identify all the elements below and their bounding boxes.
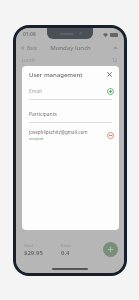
- button[interactable]: Close: [104, 69, 115, 80]
- staticText: User management: [29, 71, 104, 79]
- staticText: Back: [27, 45, 38, 51]
- staticText: Total: [24, 243, 33, 248]
- button[interactable]: Remove participant: [107, 132, 114, 139]
- button[interactable]: Add participant: [107, 88, 114, 95]
- staticText: Lunch: [22, 57, 35, 63]
- staticText: 12: [112, 57, 118, 63]
- staticText: $29.95: [24, 249, 43, 257]
- staticText: Monday lunch: [50, 44, 91, 52]
- staticText: Email: [29, 88, 107, 95]
- staticText: accepted: [29, 136, 44, 141]
- staticText: josephlipschitz@gmail.com: [29, 129, 88, 135]
- staticText: Participants: [29, 111, 57, 118]
- staticText: 0.4: [61, 249, 70, 257]
- button[interactable]: josephlipschitz@gmail.com: [22, 128, 119, 142]
- staticText: Items: [61, 243, 72, 248]
- button[interactable]: People: [107, 41, 124, 55]
- button[interactable]: Add: [103, 242, 118, 257]
- button[interactable]: Back: [16, 43, 42, 53]
- staticText: 01:08: [23, 31, 36, 38]
